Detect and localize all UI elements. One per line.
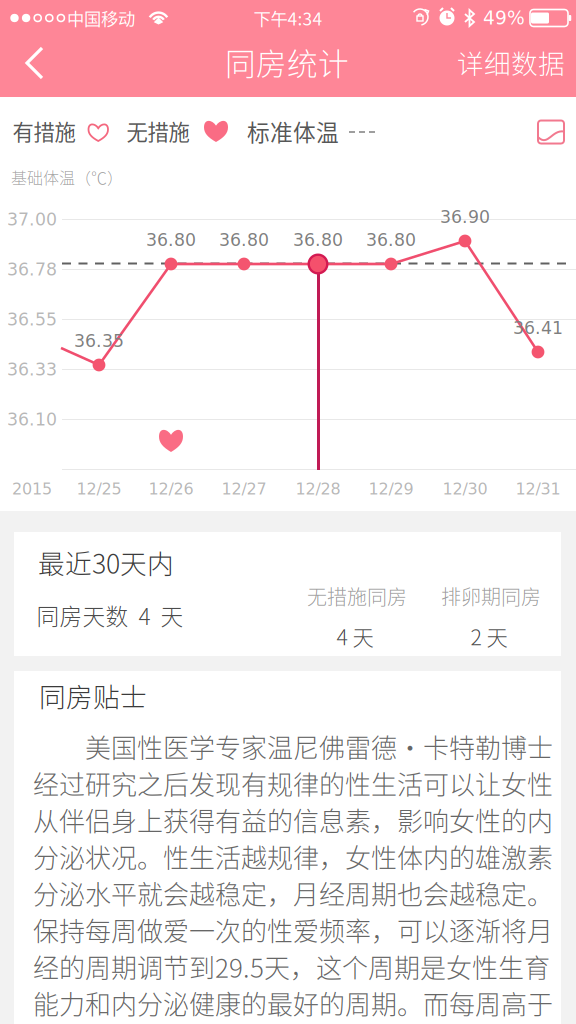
staticText: 同房贴士: [39, 676, 147, 715]
staticText: 无措施同房: [307, 581, 407, 610]
staticText: 12/28: [295, 480, 340, 498]
staticText: 4 天: [336, 621, 373, 651]
staticText: 36.80: [293, 230, 343, 250]
staticText: 12/25: [76, 480, 121, 498]
staticText: 有措施: [12, 116, 75, 146]
staticText: 12/30: [442, 480, 487, 498]
staticText: 36.80: [146, 230, 196, 250]
staticText: 同房天数 4 天: [36, 599, 183, 631]
staticText: 36.78: [7, 259, 57, 280]
staticText: 排卵期同房: [441, 581, 541, 610]
staticText: 36.41: [513, 318, 563, 338]
button[interactable]: 详细数据: [445, 30, 576, 94]
staticText: 12/26: [148, 480, 193, 498]
button[interactable]: Back: [0, 31, 72, 95]
staticText: 12/31: [515, 480, 560, 498]
staticText: 中国移动: [67, 5, 135, 31]
staticText: 2015: [12, 480, 52, 498]
staticText: 36.80: [366, 230, 416, 250]
staticText: 基础体温（℃）: [11, 165, 123, 189]
staticText: 下午4:34: [253, 5, 322, 31]
button[interactable]: Chart view: [524, 109, 576, 154]
staticText: 49%: [483, 7, 525, 29]
staticText: 2 天: [470, 621, 507, 651]
staticText: 36.55: [7, 309, 57, 330]
staticText: 36.80: [219, 230, 269, 250]
staticText: 美国性医学专家温尼佛雷德・卡特勒博士经过研究之后发现有规律的性生活可以让女性从伴…: [33, 728, 553, 1024]
staticText: 同房统计: [225, 40, 349, 84]
staticText: 无措施: [126, 116, 189, 146]
staticText: 36.35: [74, 331, 124, 351]
staticText: 详细数据: [457, 43, 565, 81]
staticText: 36.33: [7, 359, 57, 380]
staticText: 标准体温: [247, 115, 339, 147]
staticText: 12/27: [221, 480, 266, 498]
staticText: 36.90: [440, 207, 490, 227]
staticText: 37.00: [7, 209, 57, 230]
staticText: 最近30天内: [38, 543, 174, 581]
staticText: 12/29: [368, 480, 413, 498]
staticText: 36.10: [7, 409, 57, 430]
